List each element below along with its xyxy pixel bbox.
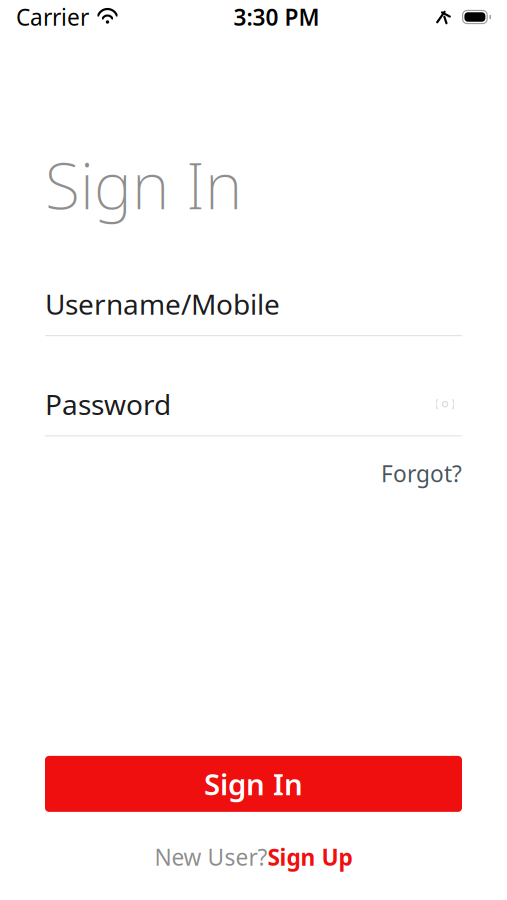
button[interactable]: Forgot? — [381, 454, 462, 492]
staticText: Sign In — [204, 764, 303, 803]
staticText: Username/Mobile — [45, 285, 280, 323]
button[interactable]: New User? — [154, 836, 352, 878]
staticText: Password — [45, 386, 171, 423]
staticText: Forgot? — [381, 458, 462, 488]
staticText: Carrier — [16, 2, 89, 32]
staticText: Sign In — [45, 142, 242, 227]
staticText: New User? — [154, 842, 267, 872]
button[interactable]: Sign In — [45, 756, 462, 812]
staticText: Sign Up — [267, 842, 352, 872]
staticText: 3:30 PM — [233, 2, 319, 32]
button[interactable]: Show password — [428, 390, 462, 418]
